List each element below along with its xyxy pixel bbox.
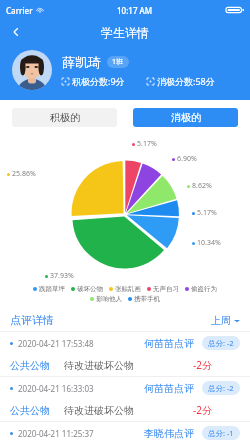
staticText: 影响他人: [96, 295, 122, 303]
staticText: 张贴乱画: [115, 285, 141, 293]
staticText: 携带手机: [134, 295, 160, 303]
staticText: 总分: -2: [208, 338, 234, 348]
staticText: Carrier: [6, 5, 33, 16]
staticText: 37.93%: [50, 271, 74, 281]
staticText: 学生详情: [101, 25, 149, 40]
staticText: 8.62%: [192, 181, 212, 191]
staticText: 2020-04-21 11:25:37: [18, 428, 94, 439]
staticText: 10.34%: [197, 238, 221, 248]
staticText: 总分: -1: [208, 428, 234, 438]
staticText: 10:17 AM: [117, 5, 153, 16]
staticText: 积极的: [50, 111, 80, 124]
staticText: 5.17%: [137, 139, 157, 149]
button[interactable]: 上周: [211, 314, 240, 327]
staticText: 破坏公物: [77, 285, 103, 293]
button[interactable]: 2020-04-21 16:33:03: [0, 377, 250, 421]
staticText: 总分: -2: [208, 383, 234, 393]
staticText: 6.90%: [177, 154, 197, 164]
staticText: 偷盗行为: [191, 285, 217, 293]
staticText: 上周: [211, 314, 231, 327]
button[interactable]: 积极的: [12, 108, 117, 127]
staticText: 公共公物: [10, 404, 50, 417]
staticText: 何苗苗点评: [144, 382, 194, 395]
staticText: 待改进破坏公物: [64, 359, 134, 372]
staticText: 2020-04-21 16:33:03: [18, 383, 94, 394]
button[interactable]: 2020-04-21 17:53:48: [0, 332, 250, 376]
staticText: -2分: [193, 403, 212, 417]
staticText: 积极分数:9分: [72, 75, 125, 87]
staticText: -2分: [193, 358, 212, 372]
staticText: 待改进破坏公物: [64, 404, 134, 417]
button[interactable]: 消极的: [133, 108, 238, 127]
button[interactable]: 2020-04-21 11:25:37: [0, 422, 250, 444]
staticText: 5.17%: [197, 208, 217, 218]
staticText: 薛凯琦: [62, 54, 101, 70]
staticText: 点评详情: [10, 313, 54, 327]
staticText: 无声自习: [153, 285, 179, 293]
staticText: 何苗苗点评: [144, 337, 194, 350]
staticText: 践踏草坪: [39, 285, 65, 293]
staticText: 公共公物: [10, 359, 50, 372]
staticText: 1班: [112, 57, 124, 67]
staticText: 消极的: [171, 111, 201, 124]
button[interactable]: Back: [6, 22, 26, 42]
staticText: 2020-04-21 17:53:48: [18, 338, 94, 349]
staticText: 消极分数:58分: [157, 75, 215, 87]
staticText: 25.86%: [12, 169, 36, 179]
staticText: 李晓伟点评: [144, 427, 194, 440]
